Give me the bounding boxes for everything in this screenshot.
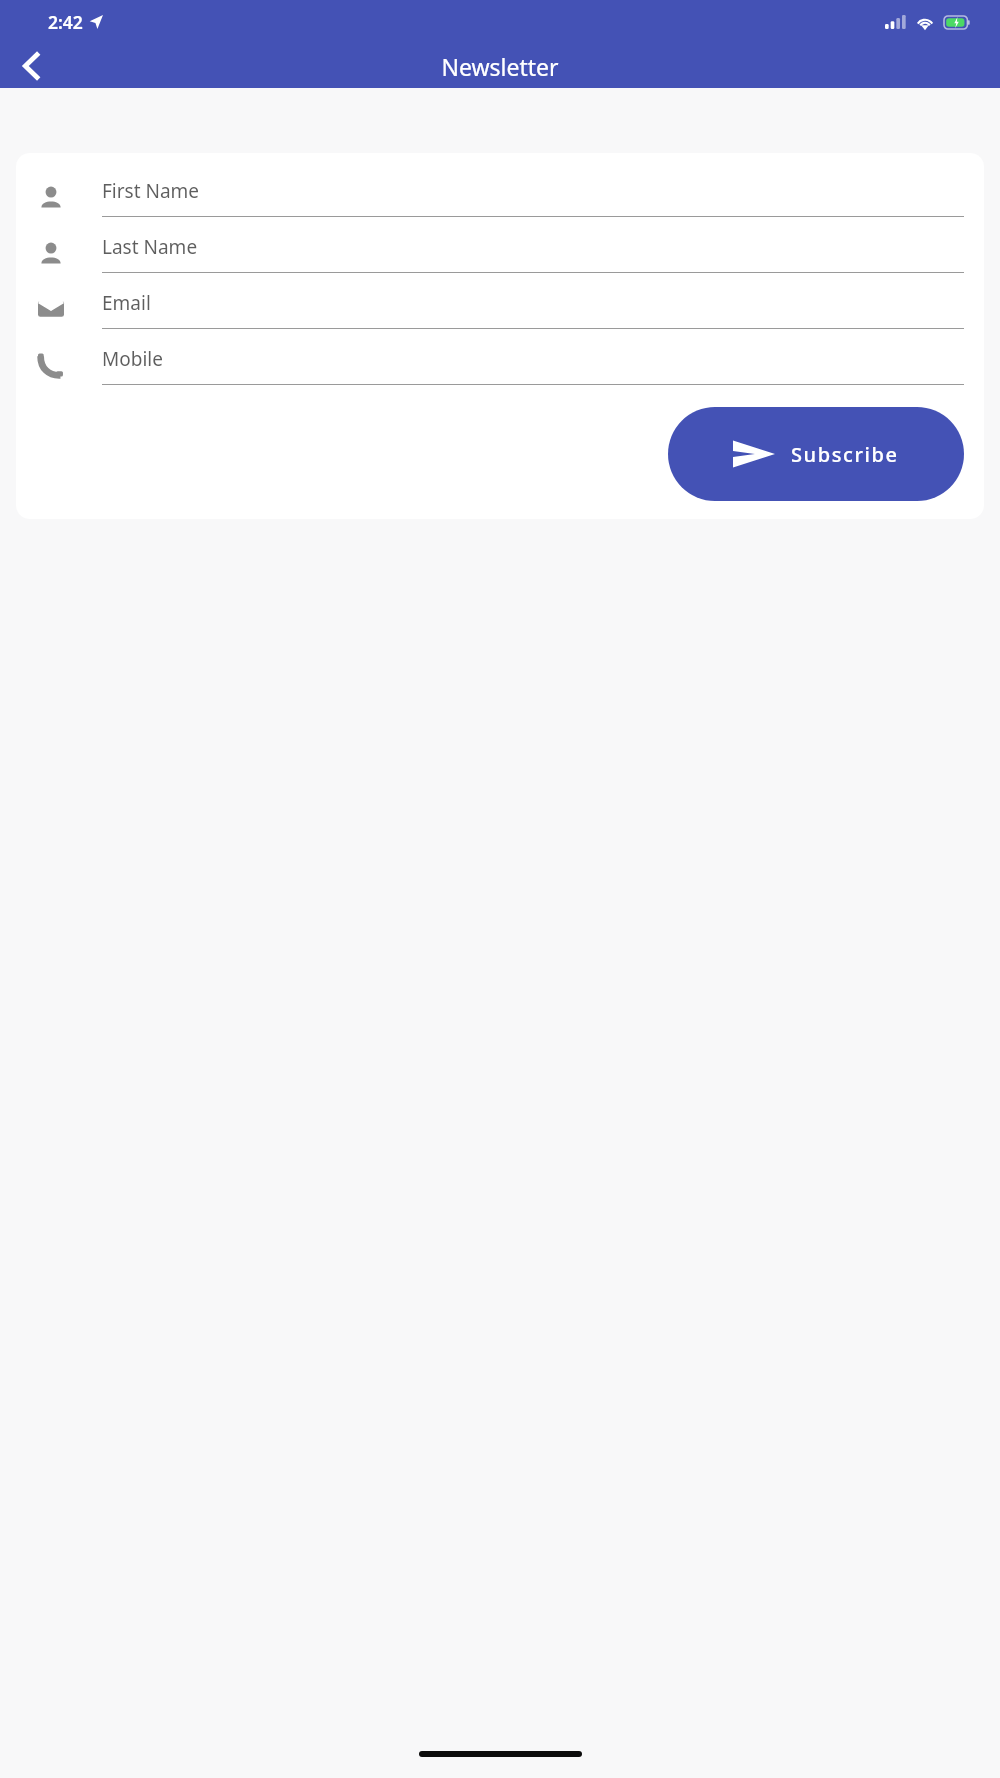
button[interactable]: Subscribe <box>668 407 964 501</box>
staticText: Last Name <box>102 234 198 260</box>
staticText: 2:42 <box>48 10 83 34</box>
button[interactable]: First Name <box>38 169 964 225</box>
staticText: Email <box>102 290 151 316</box>
button[interactable]: Back <box>10 44 54 88</box>
button[interactable]: Email <box>38 281 964 337</box>
staticText: Newsletter <box>441 51 559 82</box>
staticText: Subscribe <box>791 441 899 468</box>
staticText: First Name <box>102 178 200 204</box>
button[interactable]: Mobile <box>38 337 964 393</box>
staticText: Mobile <box>102 346 163 372</box>
button[interactable]: Last Name <box>38 225 964 281</box>
